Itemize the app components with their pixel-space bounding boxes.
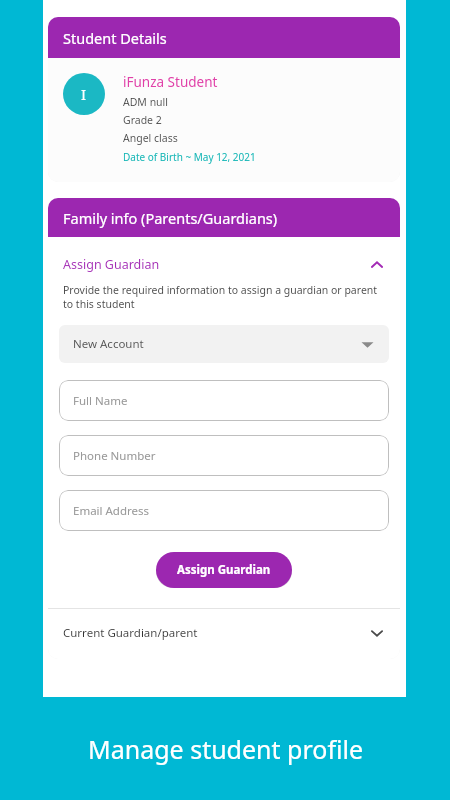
staticText: New Account	[73, 336, 144, 352]
staticText: Email Address	[73, 503, 150, 519]
staticText: iFunza Student	[123, 73, 218, 91]
staticText: Student Details	[63, 28, 167, 48]
button[interactable]: Family info (Parents/Guardians)	[48, 198, 400, 237]
button[interactable]: Phone Number	[59, 435, 389, 476]
button[interactable]: New Account	[59, 325, 389, 363]
button[interactable]: Student Details	[48, 17, 400, 58]
staticText: Current Guardian/parent	[63, 625, 198, 641]
staticText: I	[81, 84, 87, 104]
button[interactable]: Assign Guardian	[156, 552, 292, 588]
staticText: Grade 2	[123, 113, 162, 127]
staticText: Provide the required information to assi…	[63, 283, 380, 311]
staticText: ADM null	[123, 95, 169, 109]
staticText: Assign Guardian	[177, 562, 271, 578]
staticText: Phone Number	[73, 448, 156, 464]
button[interactable]: Email Address	[59, 490, 389, 531]
staticText: Assign Guardian	[63, 256, 160, 273]
button[interactable]: Current Guardian/parent	[48, 609, 400, 659]
staticText: Manage student profile	[88, 732, 363, 766]
staticText: Family info (Parents/Guardians)	[63, 208, 278, 228]
staticText: Date of Birth ~ May 12, 2021	[123, 150, 256, 164]
button[interactable]: Assign Guardian	[48, 237, 400, 279]
staticText: Full Name	[73, 393, 128, 409]
staticText: Angel class	[123, 131, 178, 145]
button[interactable]: Full Name	[59, 380, 389, 421]
